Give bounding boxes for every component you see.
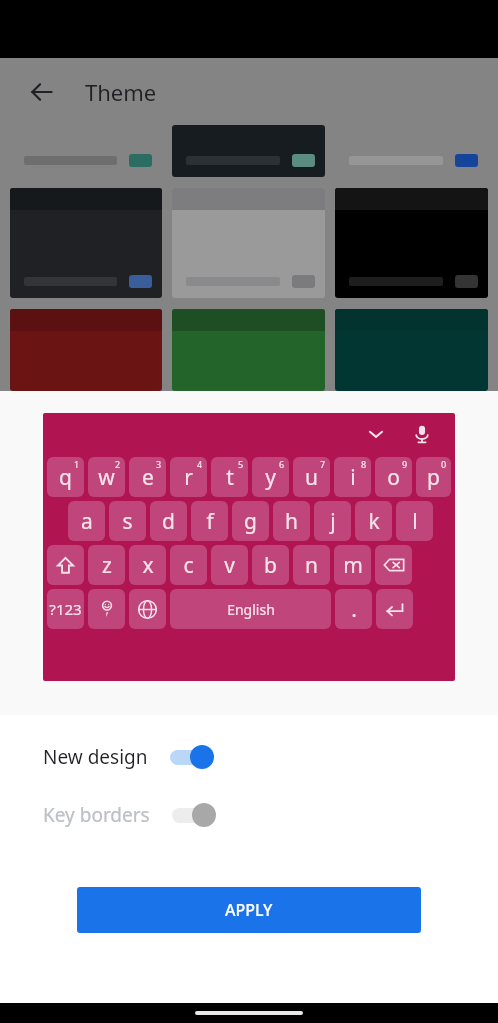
staticText: t [226,463,234,492]
button[interactable]: l [396,501,433,541]
button[interactable] [10,188,162,298]
button[interactable]: n [293,545,330,585]
staticText: 3 [156,458,162,470]
staticText: English [227,600,275,619]
staticText: 4 [197,458,203,470]
staticText: j [330,507,336,536]
button[interactable]: c [170,545,207,585]
button[interactable]: y [252,457,289,497]
staticText: r [184,463,193,492]
button[interactable] [375,545,412,585]
button[interactable]: j [314,501,351,541]
button[interactable]: p [416,457,451,497]
button[interactable] [172,188,325,298]
button[interactable]: Voice input [405,417,439,451]
staticText: . [351,595,357,624]
button[interactable]: English [170,589,331,629]
button[interactable]: r [170,457,207,497]
staticText: b [264,551,277,580]
staticText: 0 [441,458,447,470]
staticText: d [162,507,175,536]
staticText: e [142,463,154,492]
staticText: m [343,551,363,580]
button[interactable]: i [334,457,371,497]
button[interactable]: APPLY [77,887,421,933]
staticText: New design [43,744,148,770]
staticText: g [244,507,257,536]
button[interactable]: v [211,545,248,585]
button[interactable]: q [47,457,84,497]
button[interactable] [47,545,84,585]
staticText: 9 [402,458,408,470]
staticText: ?123 [49,599,82,619]
button[interactable] [172,309,325,391]
staticText: h [285,507,298,536]
button[interactable] [129,589,166,629]
button[interactable]: w [88,457,125,497]
staticText: x [142,551,154,580]
button[interactable]: k [355,501,392,541]
staticText: v [224,551,235,580]
button[interactable]: g [232,501,269,541]
staticText: p [427,463,440,492]
staticText: w [98,463,115,492]
staticText: n [305,551,318,580]
button[interactable]: u [293,457,330,497]
staticText: a [81,507,93,536]
staticText: 5 [238,458,244,470]
button[interactable]: e [129,457,166,497]
staticText: q [59,463,72,492]
staticText: s [122,507,133,536]
button[interactable] [88,589,125,629]
button[interactable] [10,125,162,177]
staticText: 7 [320,458,326,470]
button[interactable]: m [334,545,371,585]
staticText: y [265,463,276,492]
button[interactable]: d [150,501,187,541]
staticText: 8 [361,458,367,470]
staticText: f [206,507,214,536]
button[interactable] [10,309,162,391]
staticText: k [368,507,380,536]
button[interactable] [376,589,413,629]
staticText: o [387,463,400,492]
button[interactable]: . [335,589,372,629]
staticText: c [183,551,194,580]
button[interactable] [335,188,488,298]
staticText: Theme [85,77,157,107]
button[interactable] [335,125,488,177]
staticText: 1 [74,458,80,470]
button[interactable]: s [109,501,146,541]
staticText: l [412,507,418,536]
button[interactable] [172,125,325,177]
staticText: APPLY [225,899,273,921]
button[interactable]: o [375,457,412,497]
button[interactable]: t [211,457,248,497]
staticText: u [305,463,318,492]
button[interactable]: x [129,545,166,585]
staticText: Key borders [43,802,150,828]
button[interactable]: a [68,501,105,541]
staticText: i [350,463,356,492]
button[interactable]: ?123 [47,589,84,629]
button[interactable]: h [273,501,310,541]
button[interactable]: f [191,501,228,541]
staticText: z [102,551,112,580]
button[interactable]: b [252,545,289,585]
button[interactable]: Key borders [43,786,498,844]
button[interactable]: New design [43,728,498,786]
staticText: 2 [115,458,121,470]
button[interactable]: Collapse keyboard [359,417,393,451]
button[interactable]: z [88,545,125,585]
button[interactable]: Back [20,70,64,114]
staticText: 6 [279,458,285,470]
